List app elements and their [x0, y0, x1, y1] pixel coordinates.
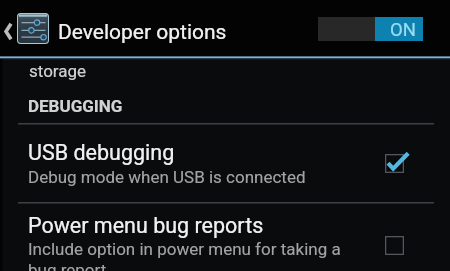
button[interactable]: Unchecked — [385, 231, 415, 261]
staticText: DEBUGGING — [28, 96, 123, 116]
button[interactable]: USB debugging — [0, 124, 450, 202]
button[interactable]: Power menu bug reports — [0, 203, 450, 271]
staticText: Power menu bug reports — [28, 213, 264, 238]
button[interactable]: Developer options switch, on — [318, 17, 423, 41]
staticText: storage — [29, 61, 87, 81]
button[interactable]: Navigate up — [0, 0, 52, 56]
staticText: Developer options — [58, 20, 227, 45]
staticText: USB debugging — [28, 140, 175, 165]
staticText: ON — [390, 19, 416, 41]
button[interactable]: Checked — [385, 149, 415, 179]
staticText: Include option in power menu for taking … — [28, 239, 341, 271]
staticText: Debug mode when USB is connected — [28, 167, 306, 187]
